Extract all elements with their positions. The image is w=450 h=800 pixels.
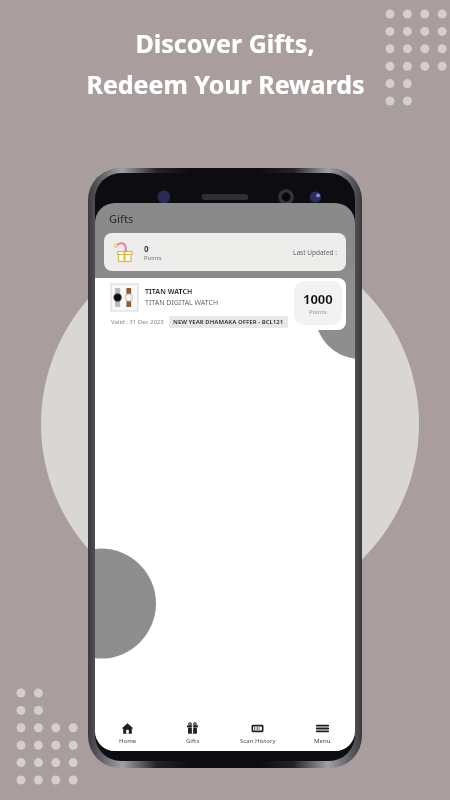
button[interactable]: 0 xyxy=(104,233,346,271)
button[interactable]: Home xyxy=(95,715,160,751)
button[interactable]: TITAN WATCH xyxy=(104,278,346,330)
staticText: Gifts xyxy=(109,211,134,226)
staticText: TITAN DIGITAL WATCH xyxy=(145,298,219,308)
staticText: Last Updated : xyxy=(293,248,338,257)
staticText: Points xyxy=(144,254,162,262)
staticText: 0 xyxy=(144,243,149,254)
staticText: Redeem Your Rewards xyxy=(86,67,365,101)
staticText: Scan History xyxy=(240,737,276,745)
staticText: Discover Gifts, xyxy=(135,26,315,60)
staticText: Home xyxy=(119,737,137,745)
staticText: TITAN WATCH xyxy=(145,287,193,297)
staticText: 1000 xyxy=(303,290,333,308)
button[interactable]: Scan History xyxy=(225,715,290,751)
staticText: Points xyxy=(309,308,327,316)
staticText: NEW YEAR DHAMAKA OFFER - BCL121 xyxy=(173,318,284,326)
staticText: Menu xyxy=(314,737,331,745)
button[interactable]: Menu xyxy=(290,715,355,751)
staticText: Valid : 31 Dec 2023 xyxy=(111,318,164,326)
staticText: Gifts xyxy=(186,737,200,745)
button[interactable]: Gifts xyxy=(160,715,225,751)
